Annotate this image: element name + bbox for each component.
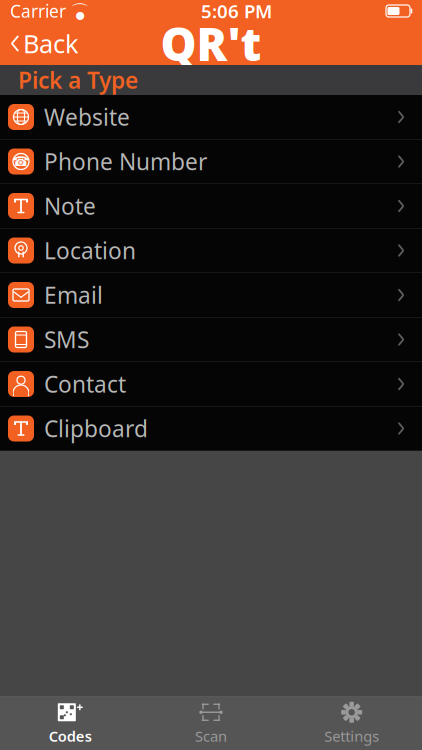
staticText: Location	[44, 235, 136, 265]
button[interactable]: Scan	[141, 697, 281, 750]
staticText: Phone Number	[44, 146, 207, 176]
staticText: Note	[44, 191, 96, 221]
button[interactable]: ☎	[0, 139, 422, 184]
staticText: SMS	[44, 324, 89, 354]
staticText: Website	[44, 102, 130, 132]
button[interactable]: Note	[0, 184, 422, 228]
button[interactable]: Back	[0, 21, 79, 66]
button[interactable]: Location	[0, 228, 422, 273]
staticText: Codes	[49, 726, 92, 746]
staticText: Pick a Type	[18, 65, 138, 95]
button[interactable]: SMS	[0, 317, 422, 362]
button[interactable]: Contact	[0, 362, 422, 406]
button[interactable]: Email	[0, 273, 422, 317]
button[interactable]: Settings	[281, 697, 422, 750]
staticText: Carrier	[10, 0, 66, 22]
staticText: Contact	[44, 369, 126, 399]
button[interactable]: Clipboard	[0, 406, 422, 451]
button[interactable]: Codes	[0, 697, 141, 750]
staticText: Back	[23, 27, 79, 60]
staticText: Settings	[324, 726, 379, 746]
staticText: ☎	[12, 154, 29, 169]
staticText: Email	[44, 280, 103, 310]
staticText: ●	[75, 9, 84, 21]
button[interactable]: Website	[0, 95, 422, 139]
staticText: Clipboard	[44, 413, 148, 443]
staticText: Scan	[195, 726, 227, 746]
staticText: QR't	[160, 13, 261, 74]
staticText: ⌒	[70, 0, 89, 23]
staticText: 5:06 PM	[201, 0, 272, 23]
